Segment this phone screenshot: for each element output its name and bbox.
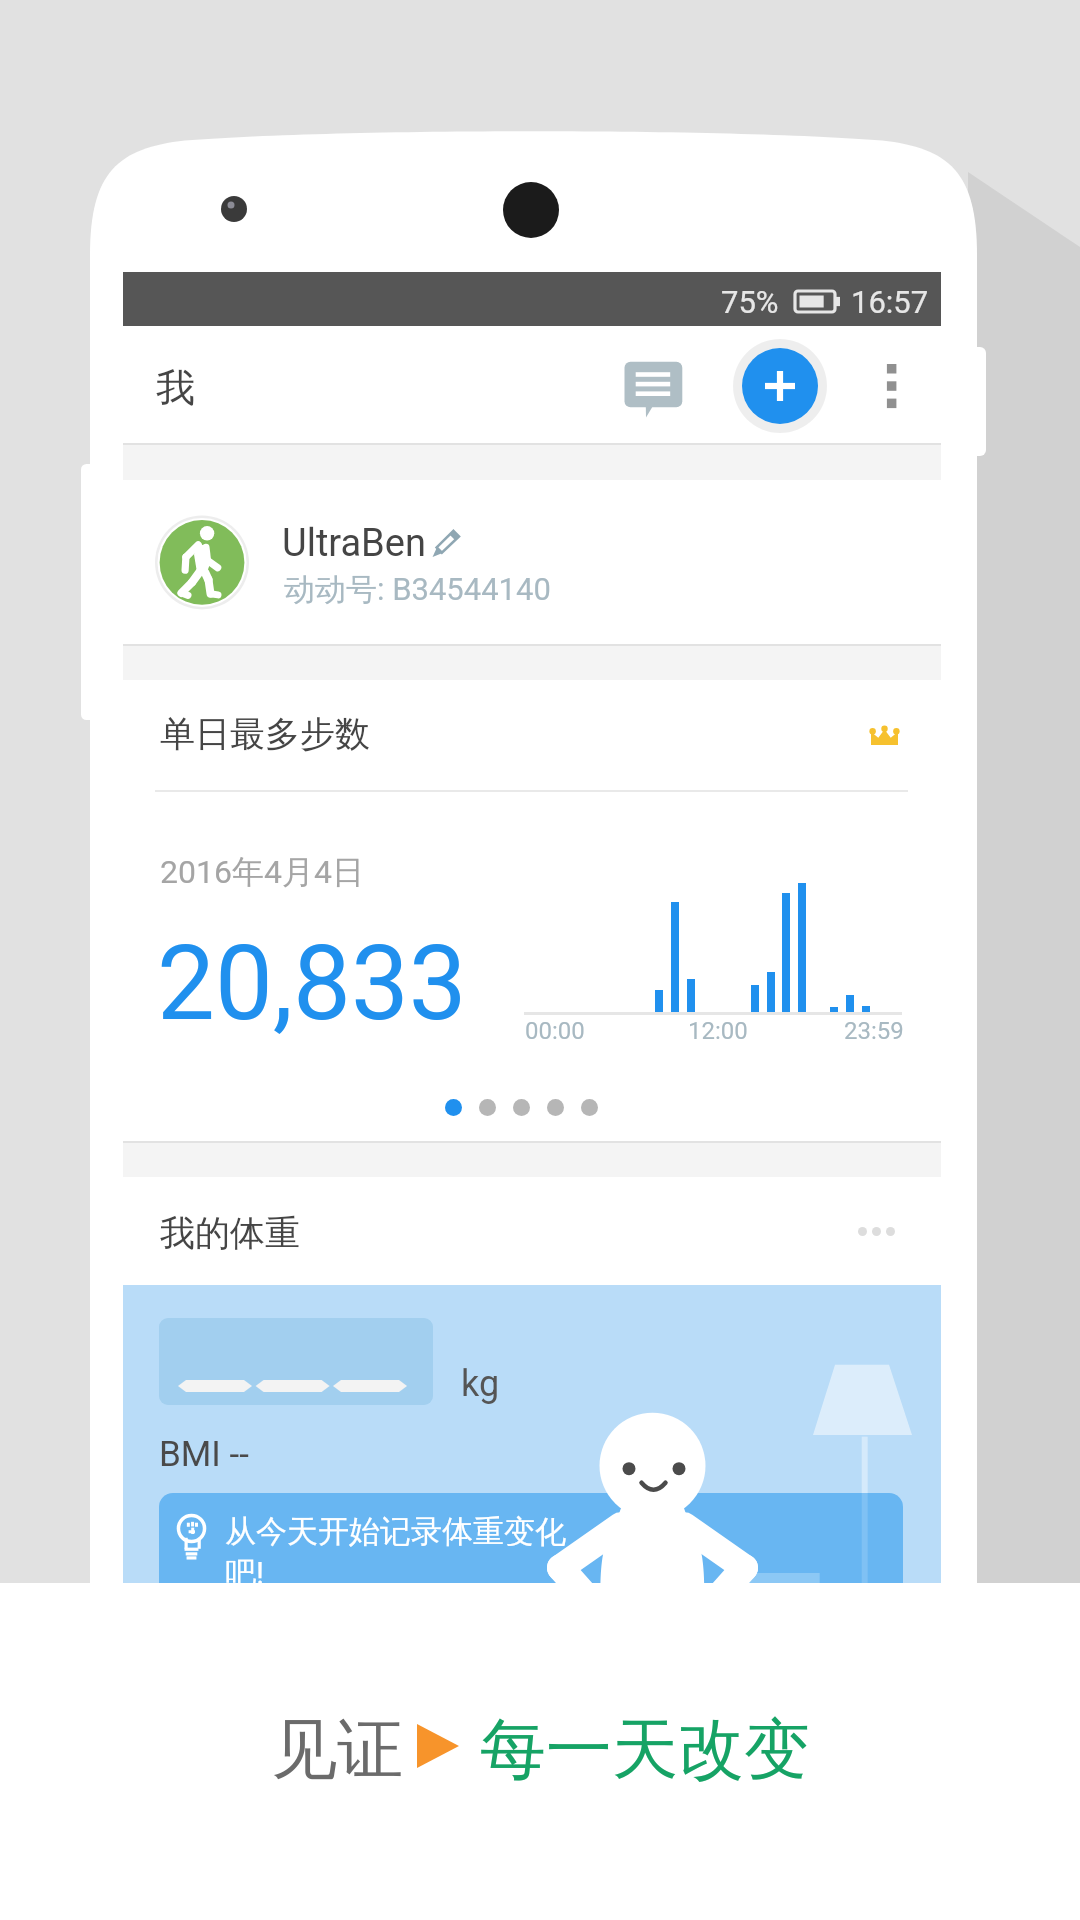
staticText: kg (461, 1363, 500, 1405)
button[interactable]: Add (742, 348, 818, 424)
button[interactable]: Page 2 (479, 1099, 496, 1116)
staticText: 见证 (271, 1708, 403, 1791)
staticText: 23:59 (844, 1017, 904, 1045)
staticText: UltraBen (282, 521, 426, 566)
button[interactable]: 我的体重 (123, 1177, 941, 1285)
staticText: 75% (721, 284, 779, 320)
button[interactable]: 从今天开始记录体重变化吧! (123, 1285, 941, 1583)
staticText: 单日最多步数 (160, 712, 370, 756)
button[interactable]: Weight card options (845, 1203, 907, 1259)
staticText: 每一天改变 (480, 1708, 810, 1791)
button[interactable]: Page 3 (513, 1099, 530, 1116)
staticText: 20,833 (157, 923, 467, 1044)
staticText: 16:57 (851, 284, 929, 320)
staticText: 动动号: B34544140 (284, 570, 551, 609)
staticText: 2016年4月4日 (160, 852, 364, 892)
button[interactable]: 单日最多步数 (123, 680, 941, 790)
button[interactable]: More options (861, 342, 911, 426)
button[interactable]: Page 1 (445, 1099, 462, 1116)
staticText: BMI -- (159, 1434, 249, 1475)
staticText: 12:00 (688, 1017, 748, 1045)
staticText: 我的体重 (160, 1211, 300, 1255)
staticText: 我 (156, 363, 195, 412)
button[interactable]: Page 4 (547, 1099, 564, 1116)
button[interactable]: UltraBen (123, 480, 941, 644)
button[interactable]: Messages (610, 350, 682, 420)
button[interactable]: Page 5 (581, 1099, 598, 1116)
staticText: 00:00 (525, 1017, 585, 1045)
staticText: 从今天开始记录体重变化吧! (225, 1512, 570, 1583)
